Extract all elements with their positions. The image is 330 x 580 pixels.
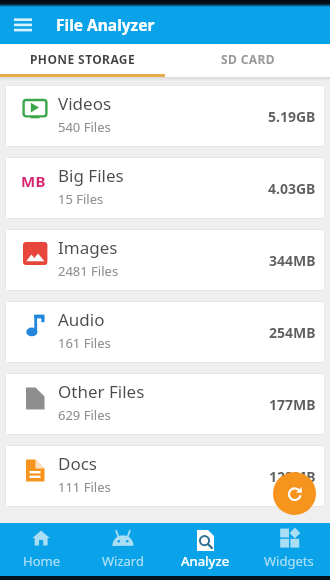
staticText: File Analyzer <box>56 14 155 35</box>
staticText: SD CARD <box>221 51 275 67</box>
staticText: 344MB <box>269 251 316 270</box>
button[interactable]: Audio <box>5 301 325 363</box>
button[interactable] <box>12 13 34 35</box>
button[interactable]: Analyze <box>164 523 247 576</box>
staticText: Home <box>23 552 60 570</box>
staticText: 111 Files <box>58 478 111 496</box>
staticText: 161 Files <box>58 334 111 352</box>
staticText: Analyze <box>181 552 230 570</box>
staticText: 540 Files <box>58 118 111 136</box>
button[interactable]: Home <box>0 523 82 576</box>
staticText: Docs <box>58 452 97 475</box>
staticText: Wizard <box>102 552 144 570</box>
button[interactable]: PHONE STORAGE <box>0 44 165 77</box>
staticText: Big Files <box>58 164 124 187</box>
staticText: Videos <box>58 92 112 115</box>
staticText: PHONE STORAGE <box>30 51 136 67</box>
staticText: 5.19GB <box>268 107 316 126</box>
button[interactable]: Widgets <box>247 523 330 576</box>
staticText: 2481 Files <box>58 262 119 280</box>
staticText: 629 Files <box>58 406 111 424</box>
button[interactable]: MB <box>5 157 325 219</box>
staticText: 4.03GB <box>268 179 316 198</box>
button[interactable]: Wizard <box>82 523 164 576</box>
staticText: Images <box>58 236 118 259</box>
button[interactable]: Other Files <box>5 373 325 435</box>
staticText: Other Files <box>58 380 145 403</box>
button[interactable] <box>273 472 316 515</box>
staticText: Widgets <box>264 552 314 570</box>
staticText: MB <box>21 171 46 191</box>
button[interactable]: Videos <box>5 85 325 147</box>
button[interactable]: Images <box>5 229 325 291</box>
staticText: 15 Files <box>58 190 104 208</box>
staticText: 123MB <box>269 467 316 486</box>
button[interactable]: Docs <box>5 445 325 507</box>
staticText: 177MB <box>269 395 316 414</box>
staticText: Audio <box>58 308 105 331</box>
staticText: 254MB <box>269 323 316 342</box>
button[interactable]: SD CARD <box>165 44 330 77</box>
